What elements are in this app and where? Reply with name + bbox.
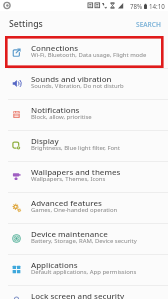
button[interactable]: Device maintenance bbox=[0, 223, 168, 254]
staticText: Brightness, Blue light filter, Font bbox=[31, 144, 120, 152]
staticText: Display bbox=[31, 136, 59, 147]
staticText: Battery, Storage, RAM, Device security bbox=[31, 237, 137, 245]
staticText: Default applications, App permissions bbox=[31, 268, 137, 276]
button[interactable]: Lock screen and security bbox=[0, 285, 168, 299]
button[interactable]: Wallpapers and themes bbox=[0, 161, 168, 192]
staticText: 14:10 bbox=[149, 2, 165, 10]
button[interactable]: Display bbox=[0, 130, 168, 161]
staticText: Sounds, Vibration, Do not disturb bbox=[31, 82, 124, 90]
button[interactable]: Advanced features bbox=[0, 192, 168, 223]
staticText: Wallpapers, Themes, Icons bbox=[31, 175, 106, 183]
staticText: Settings bbox=[9, 18, 43, 30]
staticText: SEARCH bbox=[136, 20, 161, 29]
staticText: Lock screen and security bbox=[31, 291, 125, 299]
staticText: Sounds and vibration bbox=[31, 74, 112, 85]
staticText: Block, allow, prioritise bbox=[31, 113, 92, 121]
staticText: Wallpapers and themes bbox=[31, 167, 121, 178]
button[interactable]: Applications bbox=[0, 254, 168, 285]
staticText: Applications bbox=[31, 260, 78, 271]
staticText: Connections bbox=[31, 43, 79, 54]
staticText: Device maintenance bbox=[31, 229, 108, 240]
button[interactable]: Notifications bbox=[0, 99, 168, 130]
staticText: Notifications bbox=[31, 105, 80, 116]
button[interactable]: Sounds and vibration bbox=[0, 68, 168, 99]
staticText: 78% bbox=[130, 2, 143, 10]
staticText: Games, One-handed operation bbox=[31, 206, 118, 214]
staticText: Wi-Fi, Bluetooth, Data usage, Flight mod… bbox=[31, 51, 147, 59]
staticText: Advanced features bbox=[31, 198, 102, 209]
button[interactable]: Connections bbox=[0, 37, 168, 68]
button[interactable]: SEARCH bbox=[129, 15, 168, 34]
